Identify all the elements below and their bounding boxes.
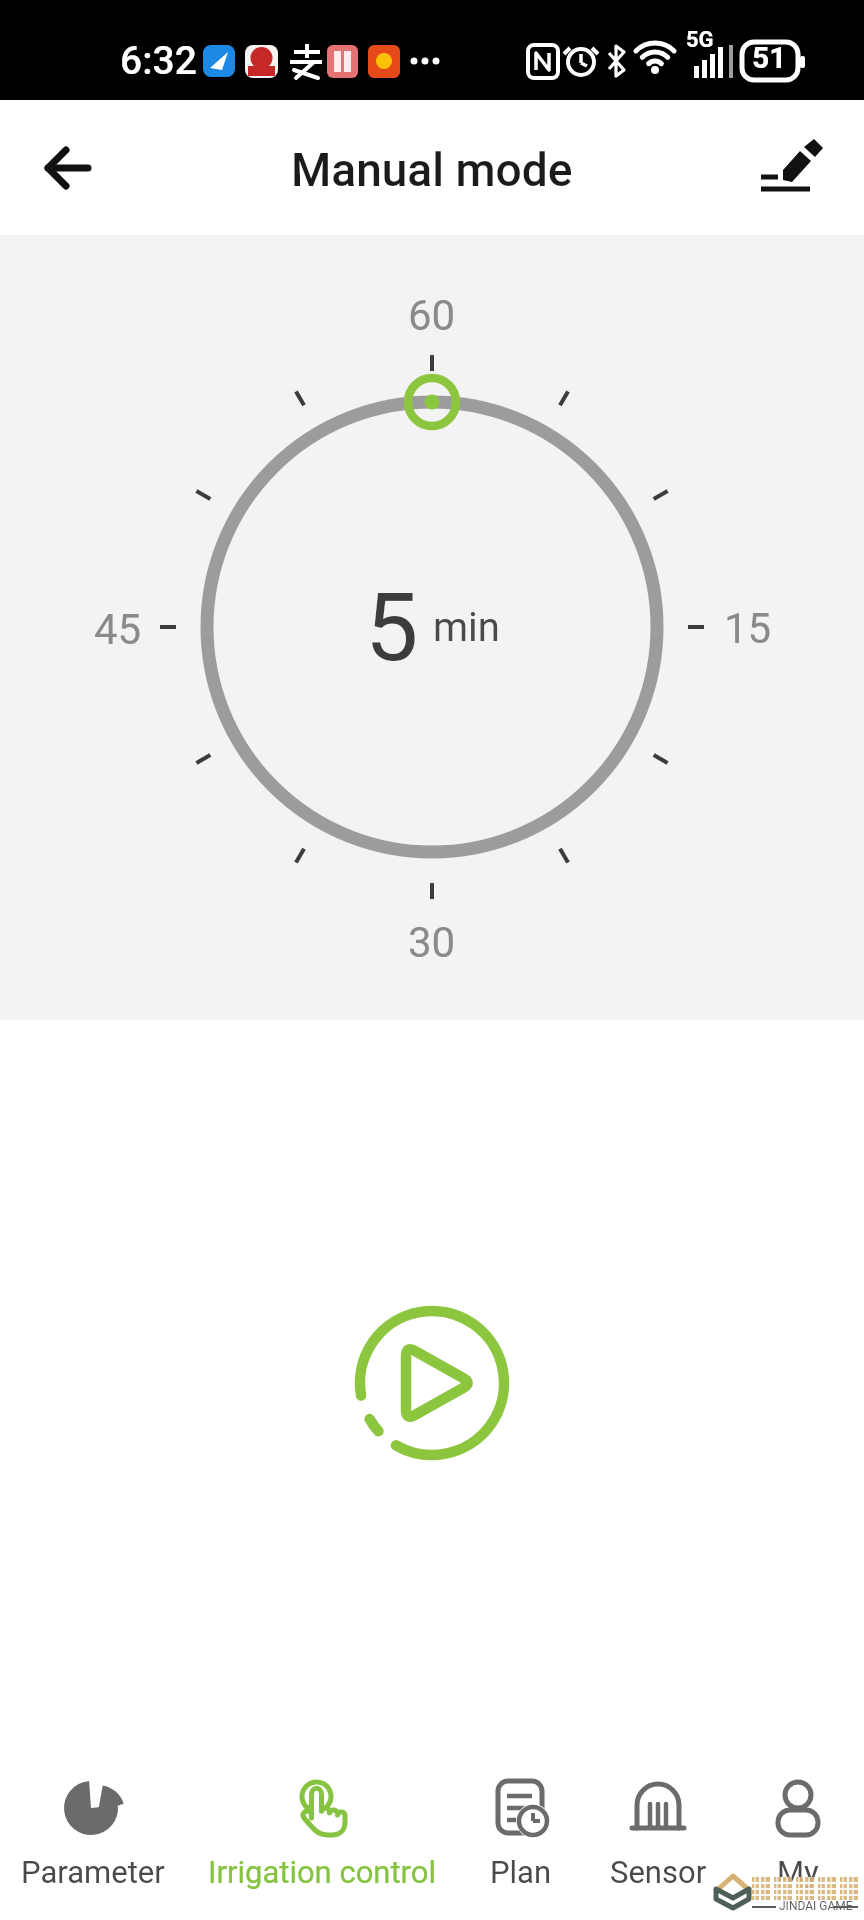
staticText: 51 bbox=[752, 40, 787, 75]
staticText: 45 bbox=[94, 605, 142, 654]
staticText: Irrigation control bbox=[208, 1854, 437, 1890]
staticText: 30 bbox=[408, 918, 456, 967]
staticText: min bbox=[433, 604, 500, 651]
button[interactable]: Plan bbox=[458, 1745, 584, 1920]
button[interactable]: Irrigation control bbox=[186, 1745, 458, 1920]
staticText: My bbox=[777, 1854, 819, 1890]
staticText: Sensor bbox=[610, 1854, 707, 1890]
button[interactable] bbox=[347, 1298, 517, 1468]
button[interactable]: My bbox=[732, 1745, 864, 1920]
button[interactable] bbox=[30, 130, 106, 206]
button[interactable]: Parameter bbox=[0, 1745, 186, 1920]
staticText: 5 bbox=[365, 572, 419, 683]
button[interactable] bbox=[748, 125, 828, 205]
staticText: 5G bbox=[686, 27, 714, 53]
staticText: Parameter bbox=[21, 1854, 165, 1890]
staticText: 6:32 bbox=[120, 38, 197, 84]
staticText: Plan bbox=[490, 1854, 552, 1890]
staticText: JINDAI GAME bbox=[779, 1899, 853, 1913]
staticText: 60 bbox=[408, 291, 456, 340]
button[interactable]: Sensor bbox=[584, 1745, 732, 1920]
staticText: 15 bbox=[724, 604, 772, 653]
staticText: Manual mode bbox=[291, 143, 573, 197]
